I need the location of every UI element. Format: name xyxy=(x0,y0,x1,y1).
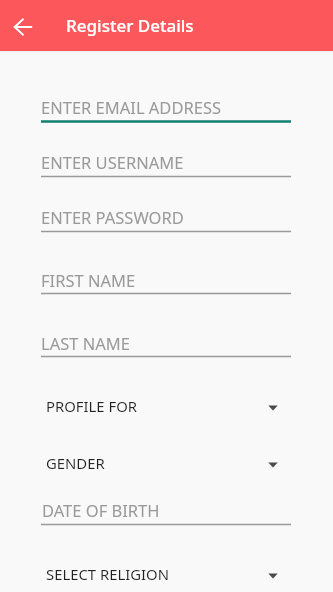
staticText: SELECT RELIGION xyxy=(46,564,169,584)
button[interactable]: PROFILE FOR xyxy=(41,386,291,428)
button[interactable]: SELECT RELIGION xyxy=(41,554,291,592)
button[interactable]: ENTER PASSWORD xyxy=(41,198,291,237)
button[interactable]: LAST NAME xyxy=(41,324,291,362)
button[interactable]: DATE OF BIRTH xyxy=(41,491,291,530)
button[interactable]: ENTER USERNAME xyxy=(41,143,291,182)
button[interactable]: FIRST NAME xyxy=(41,261,291,299)
button[interactable]: GENDER xyxy=(41,443,291,485)
staticText: Register Details xyxy=(66,14,194,37)
staticText: ENTER EMAIL ADDRESS xyxy=(41,96,222,118)
staticText: PROFILE FOR xyxy=(46,396,137,416)
staticText: ENTER USERNAME xyxy=(41,151,184,173)
button[interactable]: ENTER EMAIL ADDRESS xyxy=(41,88,291,127)
staticText: FIRST NAME xyxy=(41,269,136,291)
staticText: ENTER PASSWORD xyxy=(41,206,184,228)
button[interactable]: Navigate up xyxy=(0,4,46,50)
staticText: LAST NAME xyxy=(41,332,130,354)
staticText: DATE OF BIRTH xyxy=(42,499,160,521)
staticText: GENDER xyxy=(46,453,105,473)
